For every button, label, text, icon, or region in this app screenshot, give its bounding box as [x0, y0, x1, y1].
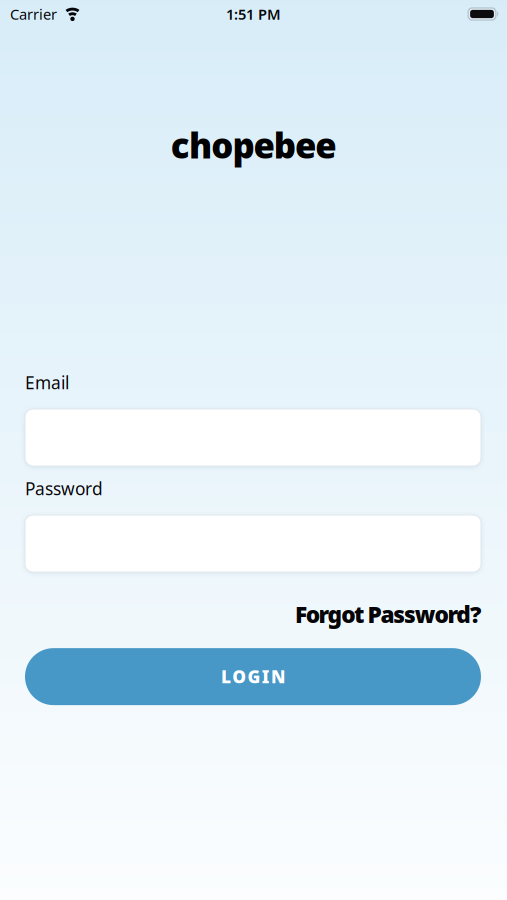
staticText: 1:51 PM — [226, 4, 281, 24]
staticText: Email — [25, 371, 69, 394]
staticText: G — [247, 665, 260, 688]
staticText: Forgot Password? — [295, 599, 481, 629]
staticText: L — [221, 665, 231, 688]
staticText: O — [232, 665, 246, 688]
staticText: I — [262, 665, 270, 688]
button[interactable]: Password — [25, 515, 481, 572]
staticText: Password — [25, 477, 103, 500]
staticText: N — [271, 665, 285, 688]
button[interactable]: Email — [25, 409, 481, 466]
staticText: chopebee — [171, 122, 336, 168]
button[interactable]: L — [25, 648, 481, 705]
button[interactable]: Forgot Password? — [295, 599, 481, 629]
staticText: Carrier — [10, 4, 57, 24]
